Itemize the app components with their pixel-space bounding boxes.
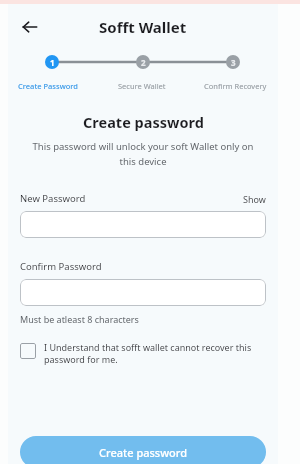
staticText: Create password: [99, 445, 188, 460]
staticText: 1: [50, 57, 55, 68]
staticText: Confirm Password: [20, 260, 102, 273]
button[interactable]: Show: [243, 193, 266, 205]
staticText: Show: [243, 193, 266, 205]
staticText: Create password: [83, 112, 204, 132]
button[interactable]: [20, 211, 266, 238]
staticText: Sofft Wallet: [99, 17, 187, 37]
staticText: 3: [231, 57, 236, 68]
button[interactable]: [20, 279, 266, 306]
button[interactable]: I Understand that sofft wallet cannot re…: [20, 341, 266, 366]
button[interactable]: Back: [14, 11, 46, 43]
button[interactable]: Create password: [20, 436, 266, 464]
staticText: Create Password: [18, 81, 78, 91]
staticText: Secure Wallet: [118, 81, 166, 91]
staticText: Must be atleast 8 characters: [20, 313, 139, 325]
staticText: New Password: [20, 192, 86, 205]
staticText: This password will unlock your soft Wall…: [26, 140, 260, 168]
staticText: 2: [141, 57, 146, 68]
staticText: I Understand that sofft wallet cannot re…: [44, 341, 266, 366]
staticText: Confirm Recovery: [204, 81, 267, 91]
